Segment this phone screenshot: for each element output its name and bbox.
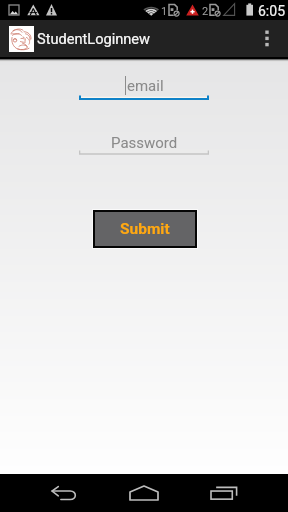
staticText: StudentLoginnew bbox=[37, 30, 151, 47]
button[interactable]: More options bbox=[246, 20, 288, 57]
staticText: 6:05 bbox=[258, 3, 285, 19]
staticText: 2 bbox=[202, 5, 209, 18]
button[interactable]: Home bbox=[96, 474, 192, 512]
button[interactable]: Submit bbox=[95, 212, 195, 246]
button[interactable]: email bbox=[79, 74, 209, 96]
staticText: 1 bbox=[161, 5, 168, 18]
staticText: email bbox=[127, 77, 164, 95]
button[interactable]: Back bbox=[16, 474, 112, 512]
button[interactable]: Password bbox=[79, 132, 209, 154]
button[interactable]: Recent apps bbox=[176, 474, 272, 512]
staticText: Submit bbox=[120, 220, 170, 238]
staticText: Password bbox=[111, 134, 178, 152]
